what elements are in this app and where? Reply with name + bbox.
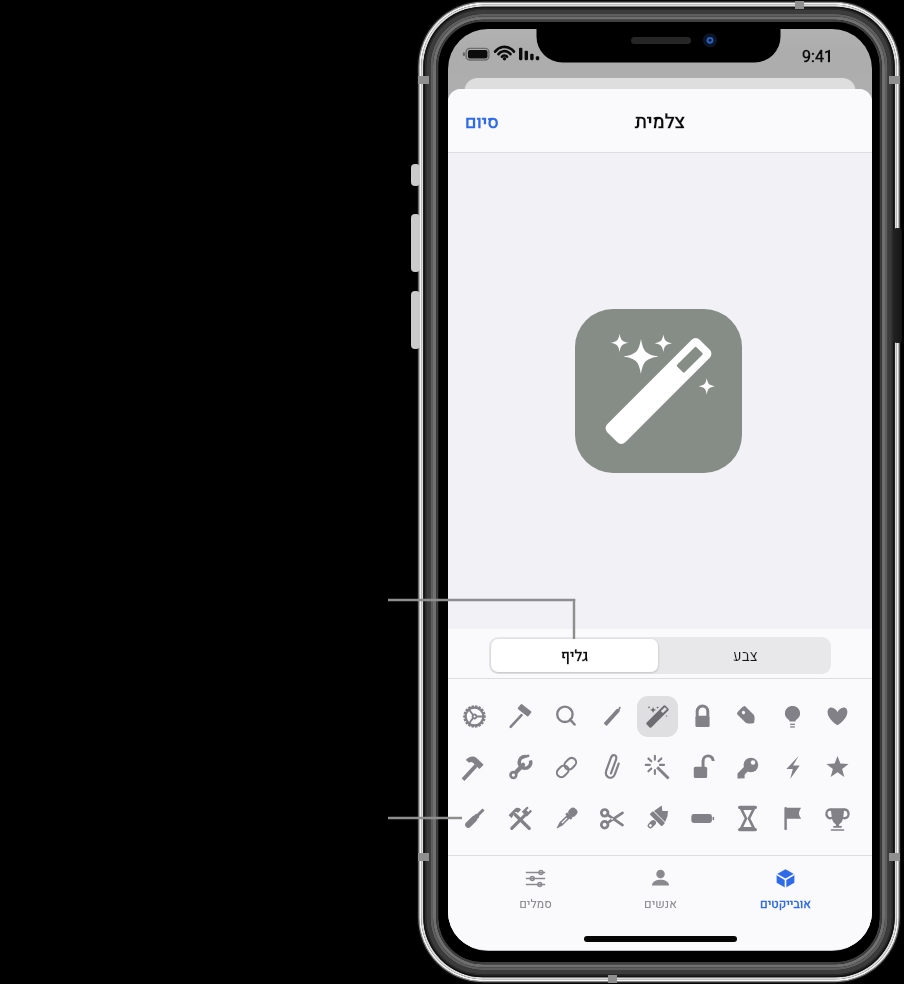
button[interactable]: Wrench [497,742,543,793]
button[interactable]: Trophy [815,793,860,844]
button[interactable]: סמלים [472,856,598,918]
staticText: צלמית [635,108,685,136]
button[interactable]: Eyedropper [543,793,589,844]
button[interactable]: Gear [451,691,497,742]
button[interactable]: Hourglass [725,793,770,844]
button[interactable]: Tag [725,691,770,742]
staticText: אנשים [644,895,677,913]
staticText: אובייקטים [760,895,811,913]
button[interactable]: גליף [491,639,658,672]
button[interactable]: Screwdriver [451,793,497,844]
button[interactable]: Search [543,691,589,742]
staticText: גליף [561,645,588,667]
button[interactable]: אנשים [598,856,723,918]
button[interactable]: אובייקטים [723,856,848,918]
button[interactable]: Mallet [497,691,543,742]
staticText: צבע [733,645,758,667]
button[interactable]: Heart [815,691,860,742]
staticText: סיום [465,109,499,135]
button[interactable]: Scissors [589,793,635,844]
button[interactable]: Paintbrush [635,793,680,844]
button[interactable]: Light bulb [770,691,815,742]
staticText: סמלים [519,895,552,913]
button[interactable]: סיום [448,100,516,144]
button[interactable]: Unlock [680,742,725,793]
button[interactable]: Link [543,742,589,793]
button[interactable]: Star [815,742,860,793]
button[interactable]: Key [725,742,770,793]
button[interactable]: Magic wand [635,691,680,742]
staticText: 9:41 [802,45,833,69]
button[interactable]: Paperclip [589,742,635,793]
button[interactable]: Hammer [451,742,497,793]
button[interactable]: צבע [660,637,831,674]
button[interactable]: Tools [497,793,543,844]
button[interactable]: Bolt [770,742,815,793]
button[interactable]: Sparkle [635,742,680,793]
button[interactable]: Flag [770,793,815,844]
button[interactable]: Lock [680,691,725,742]
button[interactable]: Battery [680,793,725,844]
button[interactable]: Pencil [589,691,635,742]
button[interactable]: Selected icon preview [575,309,742,473]
